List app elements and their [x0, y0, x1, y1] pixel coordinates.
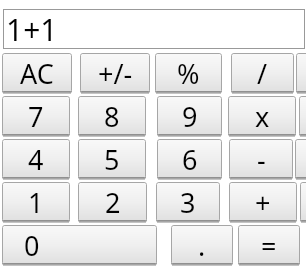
button[interactable]: x [228, 96, 296, 136]
button[interactable]: 2 [78, 182, 147, 222]
button[interactable]: 9 [157, 96, 222, 136]
staticText: AC [20, 55, 54, 92]
button[interactable]: % [155, 53, 222, 93]
staticText: 5 [104, 141, 120, 178]
button[interactable]: + [229, 182, 297, 222]
button[interactable]: 3 [156, 182, 220, 222]
button[interactable]: 4 [2, 139, 70, 179]
staticText: = [261, 227, 277, 264]
button[interactable]: 8 [78, 96, 146, 136]
staticText: % [177, 55, 200, 92]
button[interactable]: 5 [78, 139, 146, 179]
staticText: + [255, 184, 271, 221]
staticText: 8 [104, 98, 120, 135]
button[interactable]: . [171, 225, 233, 265]
staticText: 2 [105, 184, 121, 221]
staticText: 9 [182, 98, 198, 135]
button[interactable] [299, 96, 306, 136]
button[interactable]: = [238, 225, 300, 265]
staticText: . [198, 227, 206, 264]
button[interactable]: AC [2, 53, 72, 93]
staticText: +/- [98, 55, 133, 92]
button[interactable]: - [229, 139, 293, 179]
staticText: 7 [28, 98, 44, 135]
staticText: 0 [24, 227, 40, 264]
button[interactable]: 7 [2, 96, 70, 136]
button[interactable] [300, 182, 306, 222]
staticText: 1+1 [6, 9, 58, 49]
staticText: x [255, 98, 270, 135]
button[interactable] [295, 139, 306, 179]
staticText: 4 [28, 141, 44, 178]
button[interactable]: 6 [157, 139, 222, 179]
staticText: 1 [28, 184, 44, 221]
button[interactable]: 0 [2, 225, 157, 265]
staticText: 3 [180, 184, 196, 221]
button[interactable]: / [231, 53, 294, 93]
button[interactable]: +/- [80, 53, 150, 93]
staticText: - [257, 141, 266, 178]
button[interactable]: 1+1 [3, 9, 305, 49]
staticText: 6 [182, 141, 198, 178]
button[interactable] [296, 53, 306, 93]
staticText: / [257, 55, 268, 92]
button[interactable]: 1 [2, 182, 70, 222]
